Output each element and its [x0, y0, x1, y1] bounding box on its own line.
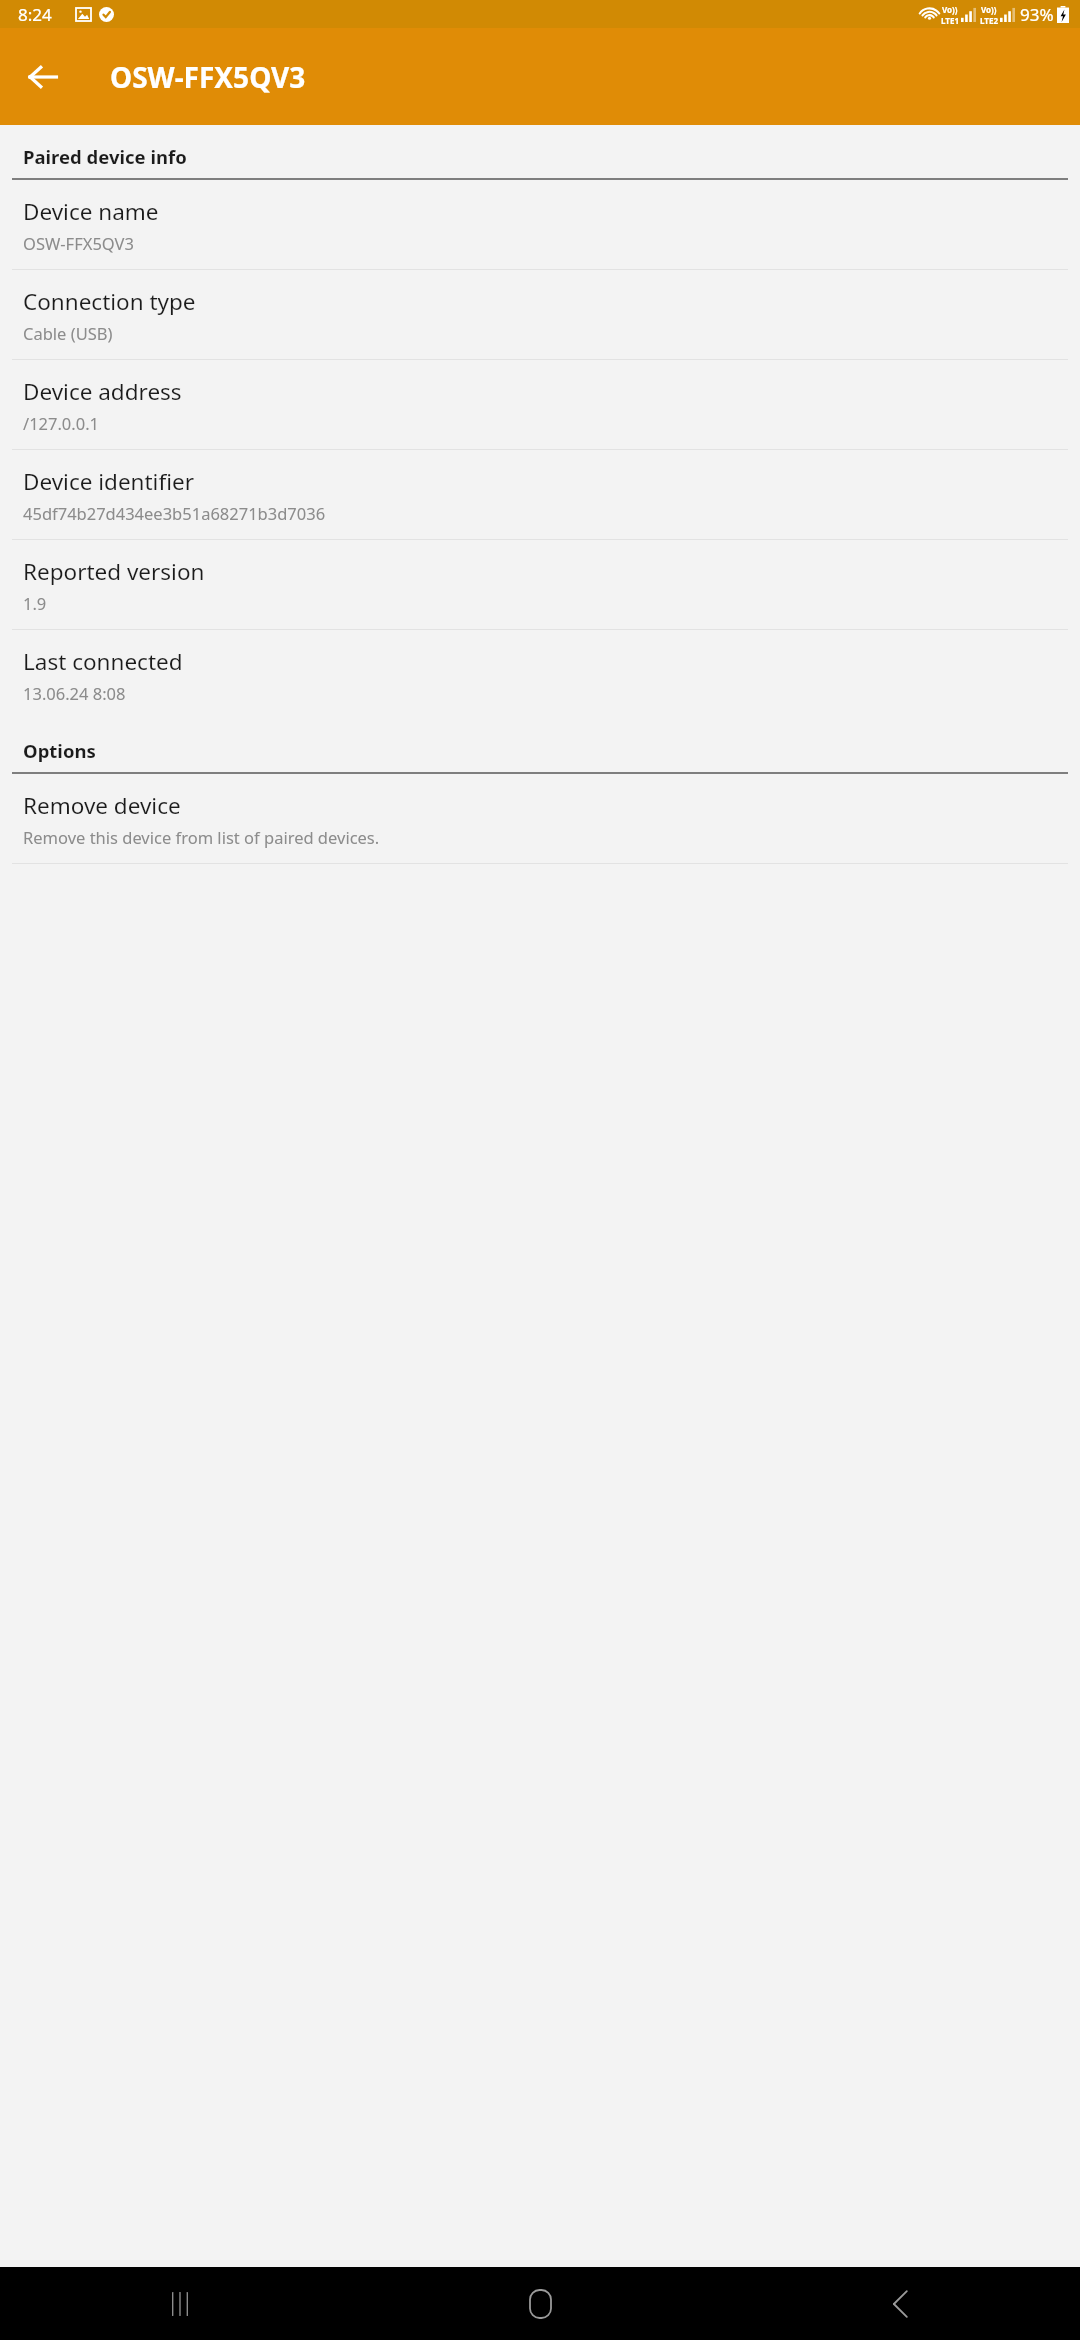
button[interactable]: Remove device: [0, 774, 1080, 864]
staticText: Vo)): [981, 4, 997, 15]
staticText: LTE1: [941, 15, 959, 26]
staticText: OSW-FFX5QV3: [110, 58, 306, 96]
staticText: Remove device: [23, 790, 181, 821]
button[interactable]: Last connected: [0, 630, 1080, 719]
staticText: 8:24: [18, 3, 52, 26]
button[interactable]: Navigate up: [15, 49, 71, 105]
staticText: Options: [23, 738, 96, 763]
button[interactable]: Device identifier: [0, 450, 1080, 540]
staticText: Device identifier: [23, 466, 194, 497]
staticText: OSW-FFX5QV3: [23, 232, 134, 254]
button[interactable]: Home: [360, 2267, 720, 2340]
button[interactable]: Connection type: [0, 270, 1080, 360]
staticText: Cable (USB): [23, 322, 113, 344]
button[interactable]: Back: [720, 2267, 1080, 2340]
staticText: Vo)): [942, 4, 958, 15]
button[interactable]: Recent apps: [0, 2267, 360, 2340]
staticText: Reported version: [23, 556, 205, 587]
staticText: Device address: [23, 376, 182, 407]
staticText: Remove this device from list of paired d…: [23, 826, 380, 848]
staticText: 93%: [1020, 3, 1054, 26]
staticText: Device name: [23, 196, 159, 227]
staticText: 13.06.24 8:08: [23, 682, 126, 704]
staticText: Last connected: [23, 646, 183, 677]
staticText: Connection type: [23, 286, 196, 317]
staticText: LTE2: [980, 15, 998, 26]
button[interactable]: Reported version: [0, 540, 1080, 630]
staticText: /127.0.0.1: [23, 412, 100, 434]
staticText: 1.9: [23, 592, 47, 614]
staticText: 45df74b27d434ee3b51a68271b3d7036: [23, 502, 326, 524]
button[interactable]: Device address: [0, 360, 1080, 450]
button[interactable]: Device name: [0, 180, 1080, 270]
staticText: Paired device info: [23, 144, 187, 169]
